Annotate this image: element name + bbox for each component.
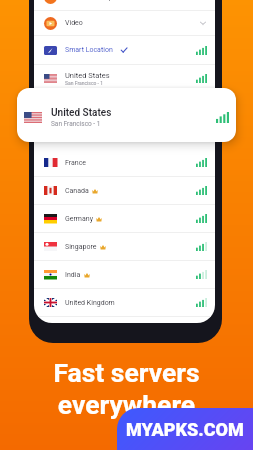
staticText: United States [65,71,110,80]
staticText: San Francisco - 1 [51,120,101,128]
staticText: MYAPKS.COM [126,419,244,440]
button[interactable]: United Kingdom [34,289,215,316]
staticText: Smart Location [65,46,113,54]
staticText: India [65,271,81,279]
staticText: Fast servers everywhere [0,357,253,420]
staticText: Singapore [65,243,97,251]
other: Selected [120,46,128,54]
button[interactable]: United States [17,88,236,142]
button[interactable]: Singapore [34,233,215,260]
staticText: United Kingdom [65,299,115,307]
staticText: Germany [65,215,93,223]
button[interactable]: MYAPKS.COM [117,408,253,450]
button[interactable]: India [34,261,215,288]
button[interactable]: Canada [34,177,215,204]
button[interactable]: Video [34,11,215,35]
other: Expand [199,19,207,27]
button[interactable]: Smart Location [34,36,215,64]
button[interactable]: Germany [34,205,215,232]
staticText: This week's top TV and movies [65,0,161,1]
staticText: San Francisco - 1 [65,80,104,86]
button[interactable]: United States [34,65,215,91]
staticText: United States [51,107,112,119]
staticText: France [65,159,87,167]
staticText: Video [65,19,83,27]
button[interactable]: This week's top TV and movies [34,0,215,10]
button[interactable]: France [34,149,215,176]
staticText: Canada [65,187,89,195]
